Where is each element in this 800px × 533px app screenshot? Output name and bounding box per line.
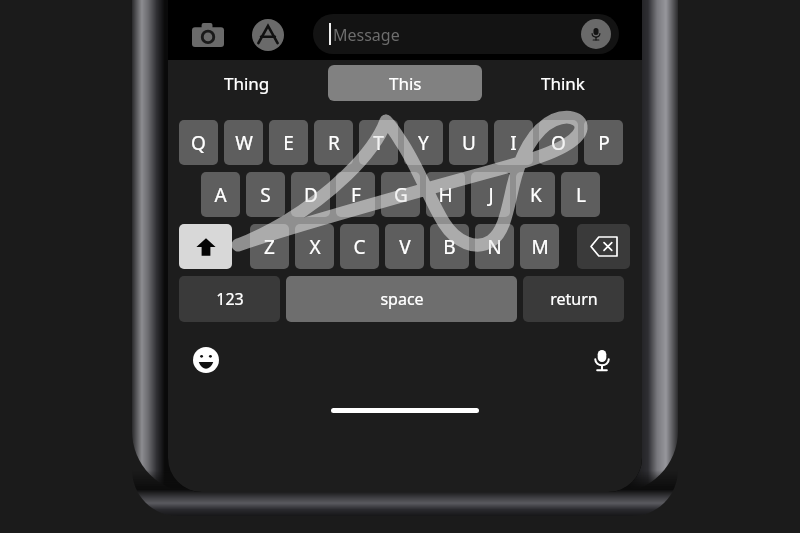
button[interactable]: Q [179,120,218,165]
button[interactable]: Emoji [188,342,224,378]
staticText: O [551,130,566,156]
button[interactable]: T [359,120,398,165]
button[interactable]: Apps [250,17,286,53]
staticText: F [351,182,361,208]
button[interactable]: S [246,172,285,217]
button[interactable]: Message [313,14,619,54]
staticText: C [353,234,366,260]
staticText: H [438,182,453,208]
button[interactable]: I [494,120,533,165]
staticText: J [488,182,494,208]
button[interactable]: K [516,172,555,217]
staticText: Message [333,24,400,46]
staticText: K [530,182,542,208]
staticText: G [394,182,408,208]
button[interactable]: F [336,172,375,217]
staticText: P [598,130,610,156]
button[interactable]: R [314,120,353,165]
staticText: Thing [224,72,270,95]
staticText: 123 [216,288,244,310]
staticText: L [576,182,586,208]
staticText: space [380,288,424,310]
staticText: N [487,234,502,260]
staticText: A [214,182,227,208]
staticText: U [462,130,476,156]
staticText: I [510,130,517,156]
button[interactable]: Dictate [581,19,611,49]
button[interactable]: E [269,120,308,165]
button[interactable]: W [224,120,263,165]
button[interactable]: H [426,172,465,217]
staticText: Z [264,234,275,260]
button[interactable]: B [430,224,469,269]
button[interactable]: Z [250,224,289,269]
button[interactable]: M [520,224,559,269]
staticText: D [304,182,318,208]
button[interactable]: Y [404,120,443,165]
button[interactable]: A [201,172,240,217]
button[interactable]: O [539,120,578,165]
button[interactable]: L [561,172,600,217]
button[interactable]: J [471,172,510,217]
button[interactable]: N [475,224,514,269]
button[interactable]: space [286,276,517,322]
button[interactable]: G [381,172,420,217]
button[interactable]: Backspace [577,224,630,269]
staticText: Q [191,130,206,156]
button[interactable]: D [291,172,330,217]
staticText: S [260,182,271,208]
staticText: W [235,130,253,156]
staticText: R [328,130,340,156]
button[interactable]: U [449,120,488,165]
button[interactable]: return [523,276,624,322]
button[interactable]: V [385,224,424,269]
staticText: T [373,130,384,156]
staticText: This [389,72,422,95]
button[interactable]: X [295,224,334,269]
button[interactable]: Thing [168,65,326,101]
button[interactable]: Dictation [584,342,620,378]
staticText: M [531,234,549,260]
button[interactable]: C [340,224,379,269]
staticText: Y [418,130,429,156]
button[interactable]: Shift [179,224,232,269]
staticText: V [399,234,411,260]
button[interactable]: P [584,120,623,165]
button[interactable]: Think [484,65,642,101]
button[interactable]: 123 [179,276,280,322]
staticText: Think [541,72,585,95]
button[interactable]: Camera [190,17,226,53]
button[interactable]: This [328,65,482,101]
staticText: B [443,234,456,260]
staticText: E [283,130,294,156]
staticText: X [309,234,321,260]
staticText: return [550,288,598,310]
